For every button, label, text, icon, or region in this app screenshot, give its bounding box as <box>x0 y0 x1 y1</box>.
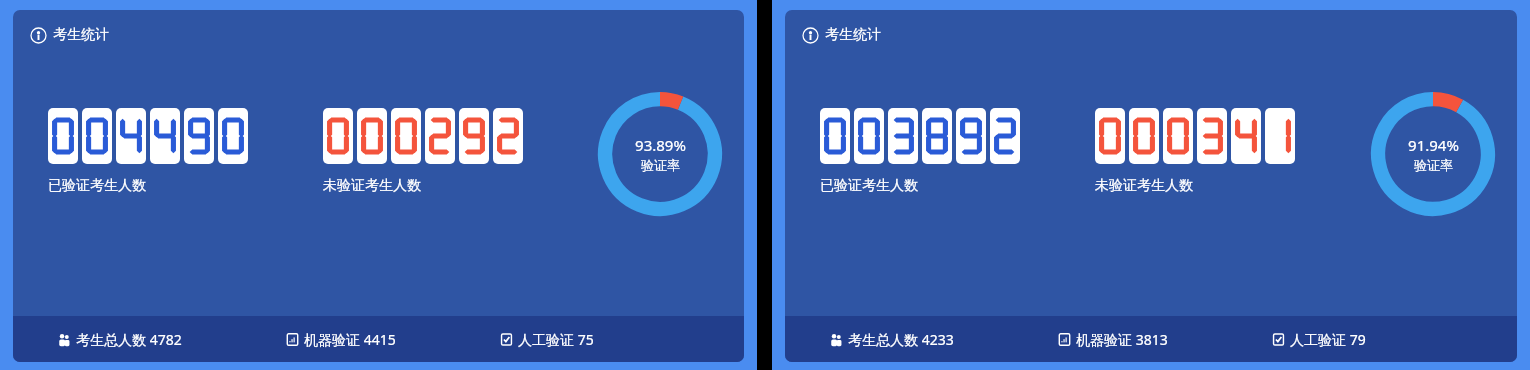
staticText: 验证率 <box>641 157 680 173</box>
staticText: 考生总人数 4782 <box>76 330 182 349</box>
button[interactable]: 考生统计 <box>801 24 883 46</box>
button[interactable]: Total candidates <box>827 328 956 351</box>
staticText: 人工验证 79 <box>1290 330 1366 349</box>
staticText: 未验证考生人数 <box>1095 177 1193 195</box>
button[interactable]: 考生统计 <box>13 10 744 362</box>
staticText: 93.89% <box>635 135 686 155</box>
button[interactable]: Total candidates <box>55 328 184 351</box>
button[interactable]: Machine verified <box>284 328 398 351</box>
staticText: 验证率 <box>1414 157 1453 173</box>
button[interactable]: Manual verified <box>1270 328 1368 351</box>
button[interactable]: 考生统计 <box>29 24 111 46</box>
staticText: 91.94% <box>1408 135 1459 155</box>
staticText: 机器验证 3813 <box>1076 330 1168 349</box>
button[interactable]: Machine verified <box>1056 328 1170 351</box>
staticText: 已验证考生人数 <box>48 177 146 195</box>
staticText: 未验证考生人数 <box>323 177 421 195</box>
staticText: 考生统计 <box>53 26 109 44</box>
staticText: 机器验证 4415 <box>304 330 396 349</box>
staticText: 考生总人数 4233 <box>848 330 954 349</box>
staticText: 考生统计 <box>825 26 881 44</box>
staticText: 已验证考生人数 <box>820 177 918 195</box>
button[interactable]: 考生统计 <box>785 10 1517 362</box>
button[interactable]: Manual verified <box>498 328 596 351</box>
staticText: 人工验证 75 <box>518 330 594 349</box>
